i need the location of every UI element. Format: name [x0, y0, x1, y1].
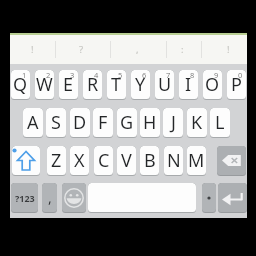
- button[interactable]: D: [70, 108, 90, 138]
- button[interactable]: P: [227, 70, 246, 100]
- staticText: C: [98, 148, 110, 173]
- staticText: ,: [136, 43, 139, 56]
- button[interactable]: [217, 146, 246, 176]
- staticText: Q: [13, 72, 28, 97]
- button[interactable]: N: [164, 146, 183, 176]
- staticText: 4: [94, 70, 99, 80]
- button[interactable]: G: [117, 108, 137, 138]
- button[interactable]: [218, 183, 247, 213]
- staticText: :: [181, 43, 184, 56]
- staticText: E: [63, 72, 74, 97]
- button[interactable]: W: [35, 70, 54, 100]
- staticText: 1: [22, 70, 27, 80]
- button[interactable]: ,: [42, 183, 57, 213]
- button[interactable]: O: [203, 70, 222, 100]
- staticText: O: [205, 72, 220, 97]
- button[interactable]: !: [218, 35, 238, 64]
- staticText: L: [215, 110, 225, 135]
- staticText: J: [171, 110, 176, 135]
- staticText: T: [111, 72, 122, 97]
- button[interactable]: M: [187, 146, 206, 176]
- button[interactable]: U: [155, 70, 174, 100]
- staticText: F: [98, 110, 108, 135]
- button[interactable]: [62, 183, 86, 213]
- staticText: V: [121, 148, 132, 173]
- staticText: 7: [166, 70, 171, 80]
- button[interactable]: K: [187, 108, 207, 138]
- staticText: Y: [135, 72, 146, 97]
- staticText: 3: [70, 70, 75, 80]
- staticText: 8: [190, 70, 195, 80]
- staticText: 2: [46, 70, 51, 80]
- staticText: ?123: [15, 192, 35, 204]
- button[interactable]: V: [117, 146, 136, 176]
- button[interactable]: Z: [47, 146, 66, 176]
- staticText: S: [51, 110, 61, 135]
- staticText: !: [31, 43, 34, 56]
- button[interactable]: [88, 183, 196, 213]
- button[interactable]: T: [107, 70, 126, 100]
- button[interactable]: [12, 146, 40, 176]
- button[interactable]: Q: [11, 70, 30, 100]
- staticText: G: [120, 110, 134, 135]
- button[interactable]: X: [70, 146, 89, 176]
- staticText: M: [188, 148, 205, 173]
- button[interactable]: A: [23, 108, 43, 138]
- staticText: X: [74, 148, 85, 173]
- button[interactable]: [202, 183, 216, 213]
- button[interactable]: R: [83, 70, 102, 100]
- staticText: H: [143, 110, 157, 135]
- staticText: B: [144, 148, 156, 173]
- button[interactable]: J: [163, 108, 183, 138]
- staticText: P: [231, 72, 242, 97]
- staticText: N: [167, 148, 181, 173]
- staticText: 6: [142, 70, 147, 80]
- staticText: I: [185, 72, 192, 97]
- staticText: 9: [214, 70, 219, 80]
- button[interactable]: L: [210, 108, 230, 138]
- button[interactable]: Y: [131, 70, 150, 100]
- button[interactable]: H: [140, 108, 160, 138]
- button[interactable]: I: [179, 70, 198, 100]
- button[interactable]: E: [59, 70, 78, 100]
- staticText: !: [227, 43, 230, 56]
- staticText: K: [191, 110, 203, 135]
- button[interactable]: ?123: [11, 183, 38, 213]
- staticText: 5: [118, 70, 123, 80]
- staticText: ?: [79, 43, 84, 56]
- staticText: 0: [238, 70, 243, 80]
- button[interactable]: !: [22, 35, 42, 64]
- staticText: D: [73, 110, 87, 135]
- button[interactable]: B: [140, 146, 159, 176]
- button[interactable]: ?: [71, 35, 91, 64]
- button[interactable]: S: [46, 108, 66, 138]
- staticText: R: [87, 72, 99, 97]
- staticText: Z: [51, 148, 62, 173]
- staticText: ,: [48, 188, 52, 207]
- staticText: A: [27, 110, 39, 135]
- staticText: W: [36, 72, 53, 97]
- button[interactable]: F: [93, 108, 113, 138]
- button[interactable]: C: [94, 146, 113, 176]
- staticText: U: [158, 72, 172, 97]
